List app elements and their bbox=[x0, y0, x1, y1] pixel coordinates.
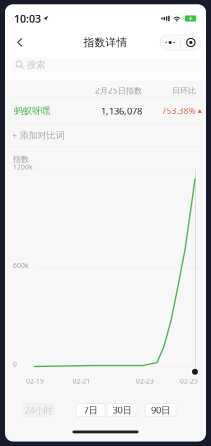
staticText: 搜索 bbox=[27, 59, 45, 71]
button[interactable]: Back bbox=[10, 32, 30, 52]
button[interactable]: 7日 bbox=[76, 403, 105, 416]
button[interactable]: 24小时 bbox=[23, 403, 54, 416]
staticText: 02-25 bbox=[180, 376, 198, 385]
staticText: 02-19 bbox=[26, 376, 44, 385]
staticText: 90日 bbox=[151, 404, 170, 416]
staticText: 10:03 bbox=[14, 11, 41, 26]
staticText: 蚂蚁呀嘿 bbox=[14, 105, 50, 117]
button[interactable]: 30日 bbox=[107, 403, 137, 416]
staticText: 指数 bbox=[13, 154, 29, 164]
button[interactable]: 搜索 bbox=[10, 57, 201, 72]
staticText: 添加对比词 bbox=[19, 130, 64, 141]
staticText: 753.38% bbox=[162, 106, 196, 116]
staticText: 2月25日指数 bbox=[95, 85, 142, 96]
staticText: 30日 bbox=[112, 404, 131, 416]
staticText: 1,136,078 bbox=[101, 105, 142, 117]
staticText: 7日 bbox=[83, 404, 97, 416]
staticText: 0 bbox=[13, 359, 17, 368]
staticText: + bbox=[12, 129, 17, 142]
staticText: 600k bbox=[13, 261, 29, 270]
button[interactable]: 90日 bbox=[145, 403, 176, 416]
staticText: 02-23 bbox=[136, 376, 154, 385]
staticText: 1200k bbox=[13, 162, 33, 171]
button[interactable]: Close bbox=[181, 35, 201, 50]
button[interactable]: + bbox=[5, 128, 206, 142]
staticText: 指数详情 bbox=[83, 36, 127, 49]
staticText: 02-21 bbox=[72, 376, 90, 385]
staticText: 日环比 bbox=[172, 86, 196, 95]
button[interactable]: More bbox=[160, 35, 180, 50]
staticText: 24小时 bbox=[24, 404, 52, 416]
